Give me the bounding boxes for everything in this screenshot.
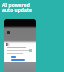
staticText: auto update: [2, 7, 32, 14]
staticText: AI powered: [2, 2, 30, 9]
